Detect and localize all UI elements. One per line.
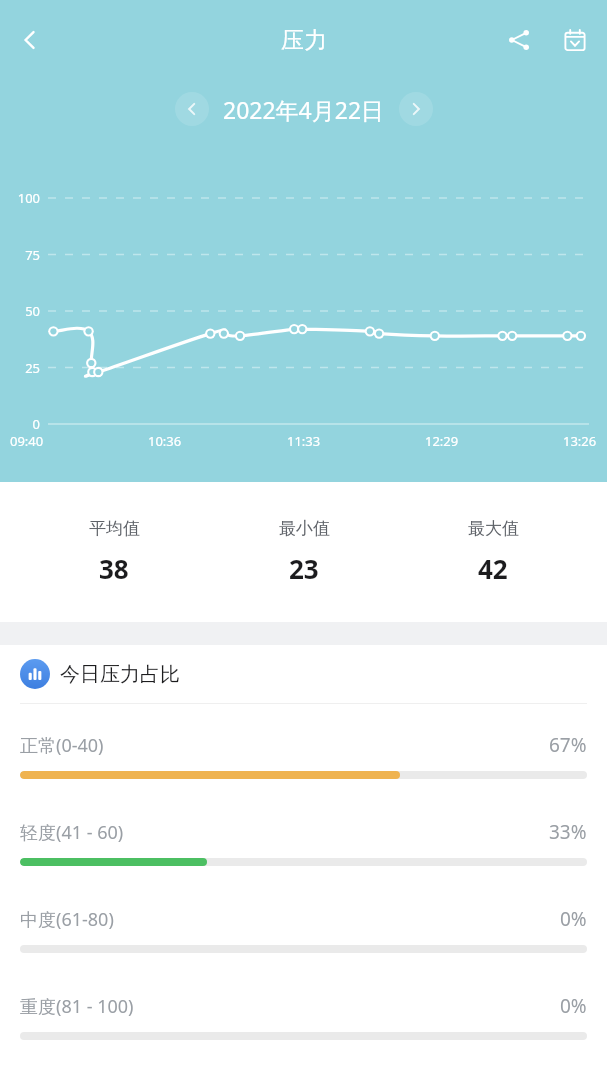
staticText: 13:26 [563,432,597,450]
staticText: 正常(0-40) [20,733,104,758]
button[interactable]: 中度(61-80) [0,906,607,953]
staticText: 轻度(41 - 60) [20,820,124,845]
staticText: 12:29 [425,432,459,450]
staticText: 42 [478,551,508,586]
staticText: 0% [560,906,587,932]
staticText: 2022年4月22日 [223,94,385,125]
staticText: 今日压力占比 [60,662,180,687]
staticText: 11:33 [287,432,321,450]
button[interactable]: Previous day [175,92,209,126]
staticText: 平均值 [89,518,140,539]
button[interactable]: 最大值 [418,512,568,592]
staticText: 67% [549,732,587,758]
button[interactable]: 平均值 [39,512,189,592]
staticText: 0 [6,415,40,433]
staticText: 33% [549,819,587,845]
button[interactable]: Back [6,16,54,64]
staticText: 100 [6,189,40,207]
staticText: 50 [6,302,40,320]
staticText: 最小值 [279,518,330,539]
staticText: 25 [6,359,40,377]
button[interactable]: 最小值 [229,512,379,592]
staticText: 23 [289,551,319,586]
staticText: 09:40 [10,432,44,450]
button[interactable]: Share [495,16,543,64]
button[interactable]: 正常(0-40) [0,732,607,779]
staticText: 压力 [281,26,327,55]
staticText: 10:36 [148,432,182,450]
button[interactable]: 重度(81 - 100) [0,993,607,1040]
staticText: 重度(81 - 100) [20,994,134,1019]
button[interactable]: Calendar [551,16,599,64]
staticText: 38 [99,551,129,586]
staticText: 中度(61-80) [20,907,114,932]
staticText: 最大值 [468,518,519,539]
button[interactable]: Next day [399,92,433,126]
button[interactable]: 今日压力占比 [0,645,607,703]
staticText: 75 [6,246,40,264]
button[interactable]: 轻度(41 - 60) [0,819,607,866]
staticText: 0% [560,993,587,1019]
